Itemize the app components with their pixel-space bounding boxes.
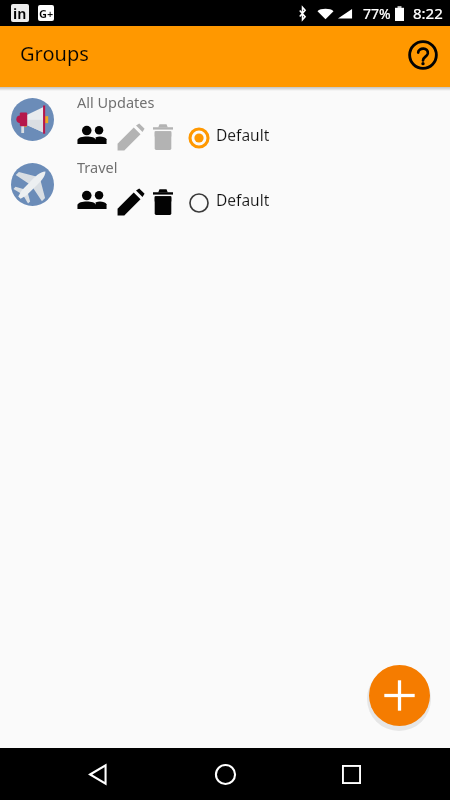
button[interactable]: Delete <box>150 187 176 217</box>
staticText: 8:22 <box>413 3 443 23</box>
button[interactable]: All Updates <box>0 91 450 156</box>
button[interactable]: Help <box>401 33 445 77</box>
staticText: All Updates <box>77 92 155 112</box>
staticText: G+ <box>39 6 54 21</box>
button[interactable]: Recents <box>326 748 377 800</box>
button[interactable]: Delete <box>150 122 176 152</box>
button[interactable]: Add group <box>369 665 430 726</box>
button[interactable]: Default <box>188 118 270 148</box>
button[interactable]: Edit <box>114 122 146 152</box>
button[interactable]: Travel <box>0 156 450 221</box>
staticText: Travel <box>77 157 118 177</box>
button[interactable]: Back <box>72 748 123 800</box>
staticText: Default <box>216 189 270 210</box>
staticText: Groups <box>20 40 89 67</box>
button[interactable]: Members <box>73 185 111 215</box>
staticText: 77% <box>363 4 391 23</box>
button[interactable]: Members <box>73 120 111 150</box>
button[interactable]: Home <box>200 748 250 800</box>
staticText: in <box>13 4 27 22</box>
button[interactable]: Default <box>188 183 270 213</box>
staticText: Default <box>216 124 270 145</box>
button[interactable]: Edit <box>114 187 146 217</box>
